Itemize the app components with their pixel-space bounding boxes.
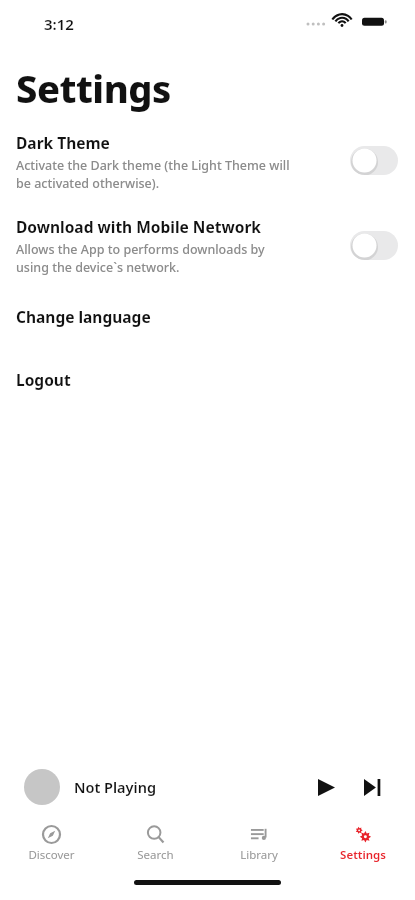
button[interactable]: Search xyxy=(103,822,207,872)
button[interactable]: Discover xyxy=(0,822,103,872)
staticText: Logout xyxy=(16,369,71,390)
button[interactable]: Settings xyxy=(311,822,415,872)
staticText: Not Playing xyxy=(74,777,156,797)
staticText: using the device`s network. xyxy=(16,259,180,276)
staticText: Change language xyxy=(16,306,151,327)
staticText: 3:12 xyxy=(44,14,74,34)
button[interactable]: Library xyxy=(207,822,311,872)
staticText: Settings xyxy=(16,62,171,114)
button[interactable]: Change language xyxy=(0,301,415,331)
staticText: Allows the App to performs downloads by xyxy=(16,241,265,258)
button[interactable]: Skip next xyxy=(357,772,387,802)
button[interactable]: Download with Mobile Network xyxy=(350,231,398,260)
button[interactable]: Logout xyxy=(0,364,415,394)
button[interactable]: Play xyxy=(311,772,341,802)
button[interactable]: Dark Theme xyxy=(0,132,415,196)
staticText: Activate the Dark theme (the Light Theme… xyxy=(16,157,290,174)
button[interactable]: Download with Mobile Network xyxy=(0,216,415,280)
staticText: Library xyxy=(240,847,278,863)
staticText: Dark Theme xyxy=(16,132,110,153)
staticText: Settings xyxy=(340,847,386,863)
staticText: Download with Mobile Network xyxy=(16,216,261,237)
staticText: Search xyxy=(137,847,174,863)
button[interactable]: Dark Theme xyxy=(350,146,398,175)
button[interactable]: Not Playing xyxy=(10,758,405,816)
staticText: be activated otherwise). xyxy=(16,175,160,192)
staticText: Discover xyxy=(28,847,75,863)
